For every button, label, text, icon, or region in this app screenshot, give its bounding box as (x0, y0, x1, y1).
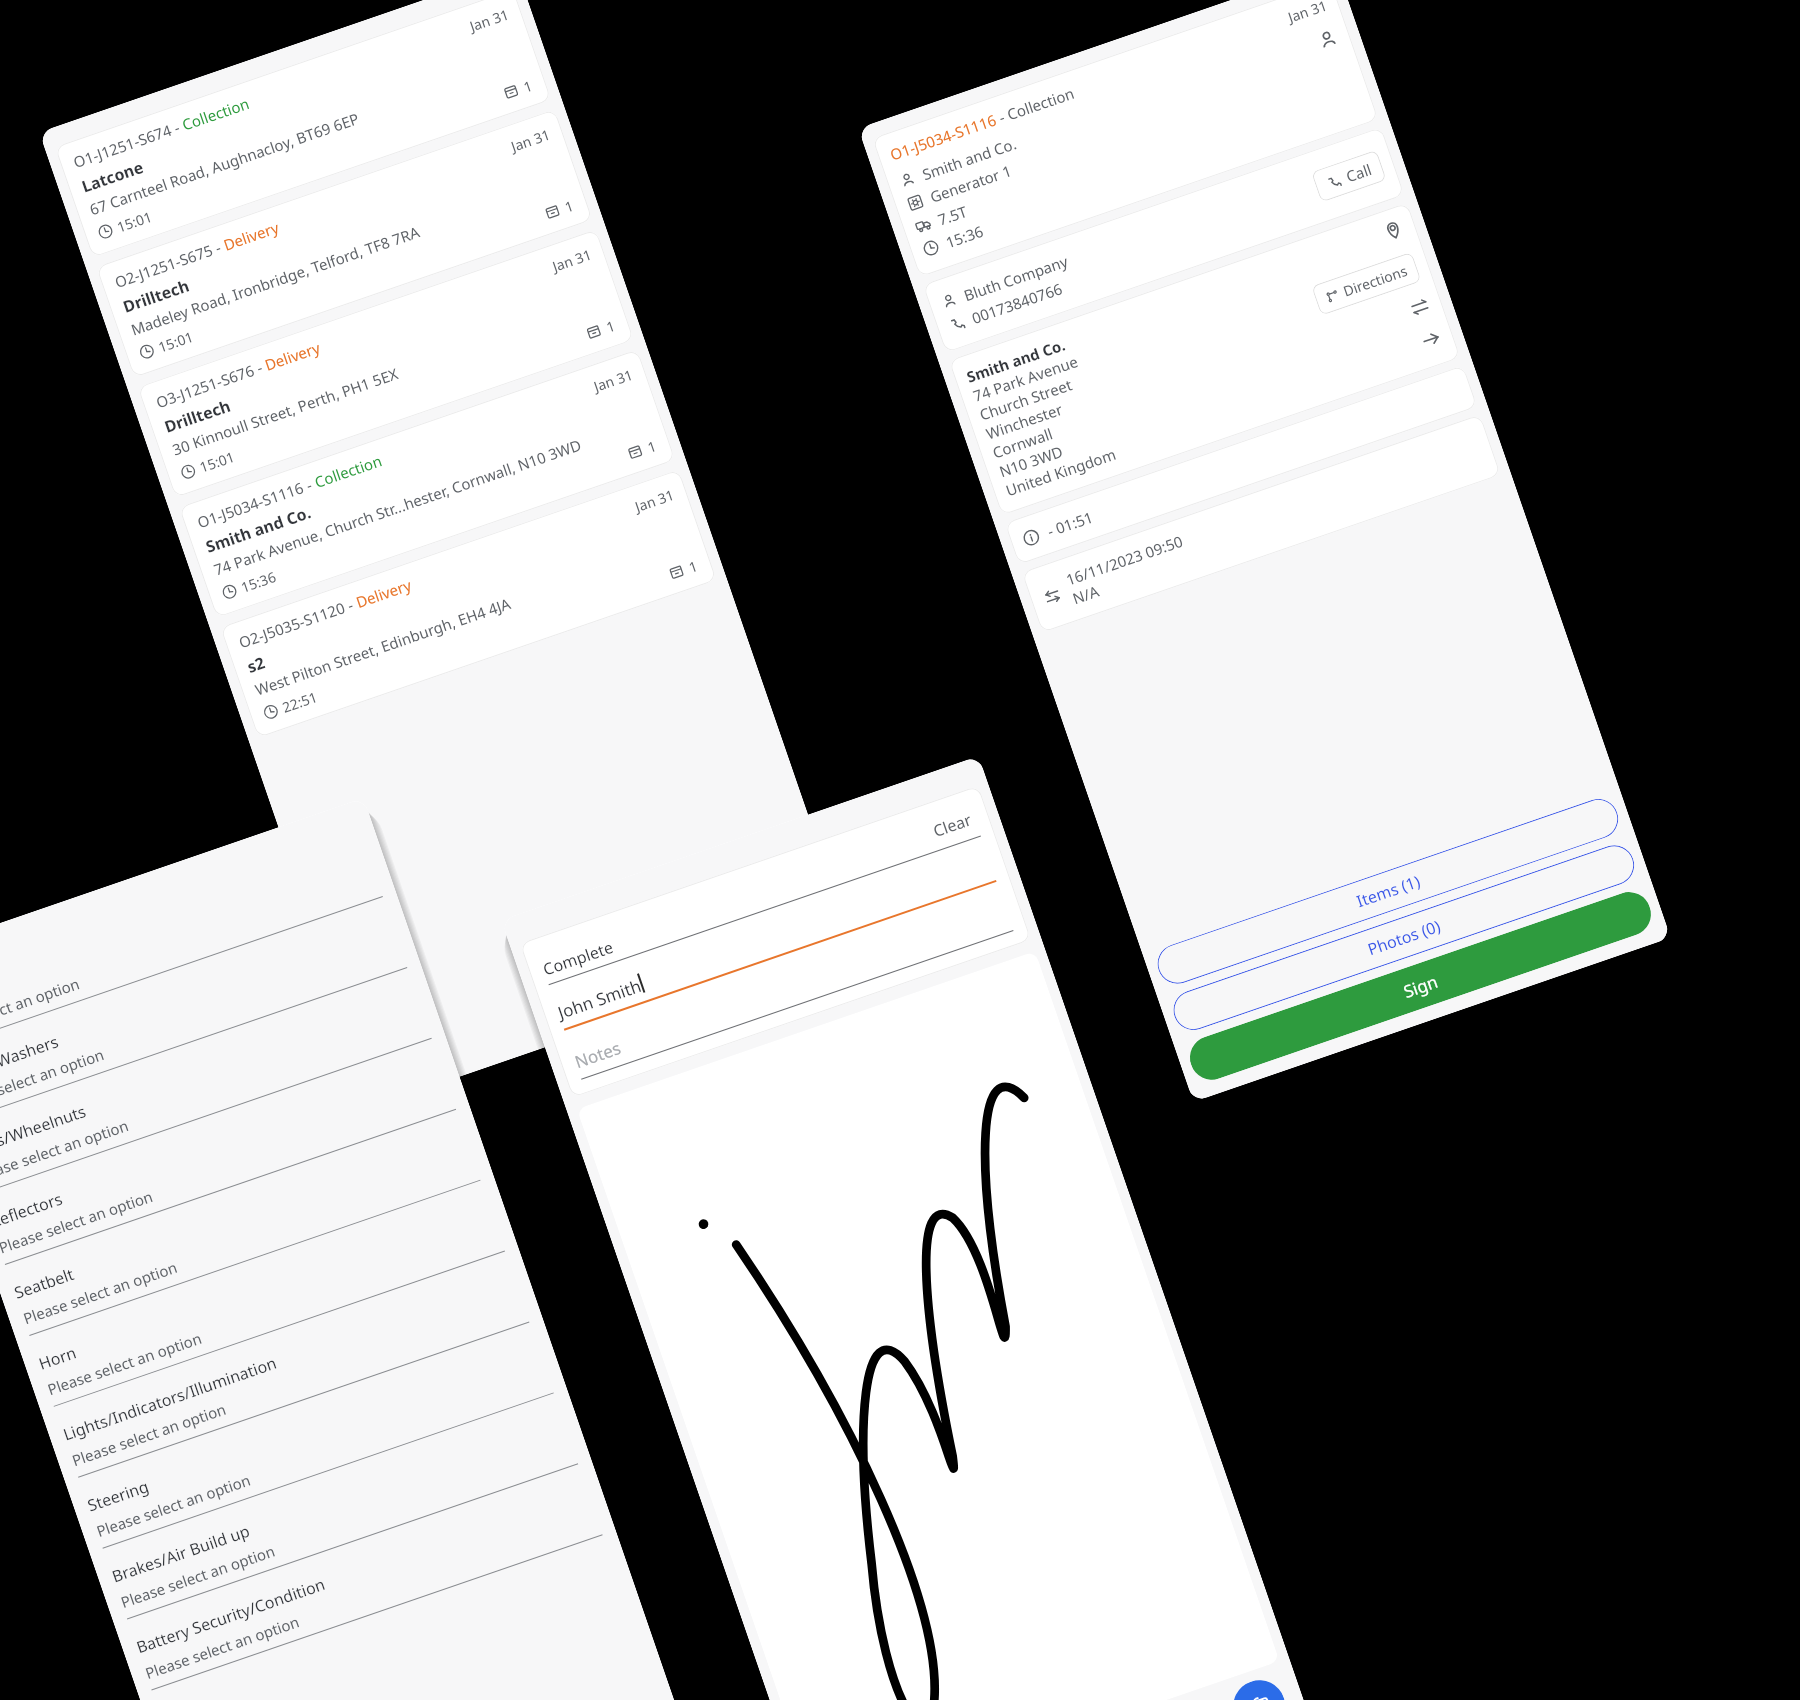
staticText: Please select an option (94, 1469, 253, 1541)
staticText: Please select an option (0, 973, 82, 1045)
staticText: O2-J5035-S1120 - (236, 593, 360, 652)
staticText: 7.5T (935, 201, 970, 230)
staticText: 16/11/2023 09:50 (1063, 530, 1186, 589)
staticText: O3-J1251-S676 - (153, 356, 268, 412)
staticText: Seatbelt (11, 1263, 77, 1304)
button[interactable]: Horn (31, 1185, 507, 1411)
staticText: Please select an option (45, 1328, 205, 1399)
button[interactable]: Call (1311, 150, 1387, 202)
staticText: Smith and Co. (964, 334, 1068, 387)
staticText: 74 Park Avenue, Church Str...hester, Cor… (211, 434, 584, 579)
staticText: Jan 31 (467, 5, 511, 36)
staticText: Call (1343, 159, 1374, 186)
button[interactable]: Mirrors (0, 831, 384, 1057)
staticText: 1 (521, 76, 535, 96)
staticText: - 01:51 (1044, 506, 1096, 541)
button[interactable]: Tyres/Wheelnuts (0, 973, 433, 1199)
staticText: 00173840766 (969, 278, 1065, 328)
staticText: Delivery (353, 574, 415, 612)
staticText: 15:36 (943, 221, 986, 252)
button[interactable]: Seatbelt (7, 1114, 482, 1341)
staticText: 1 (562, 196, 577, 216)
button[interactable]: Clear (925, 803, 979, 847)
staticText: 15:01 (114, 85, 507, 236)
staticText: Photos (0) (1365, 915, 1444, 960)
staticText: United Kingdom (1003, 444, 1119, 500)
staticText: Please select an option (0, 1044, 107, 1116)
staticText: Wipers/Washers (0, 1030, 62, 1091)
button[interactable]: Directions (1311, 252, 1421, 316)
button[interactable]: Items (1) (1152, 793, 1624, 989)
staticText: 30 Kinnoull Street, Perth, PH1 5EX (170, 363, 401, 459)
button[interactable]: Take photo (1226, 1673, 1292, 1700)
button[interactable]: Contact (1315, 27, 1340, 52)
staticText: Collection (179, 93, 252, 135)
staticText: Battery Security/Condition (133, 1573, 329, 1658)
staticText: Items (1) (1354, 870, 1423, 912)
staticText: - Collection (992, 82, 1077, 128)
staticText: Delivery (262, 337, 323, 375)
staticText: O2-J1251-S675 - (112, 236, 227, 292)
staticText: Madeley Road, Ironbridge, Telford, TF8 7… (128, 221, 422, 339)
staticText: Jan 31 (1285, 0, 1329, 27)
staticText: Please select an option (142, 1611, 302, 1683)
staticText: 1 (645, 436, 660, 457)
button[interactable]: Swap (1407, 294, 1433, 320)
staticText: 15:01 (197, 325, 590, 477)
staticText: Jan 31 (550, 245, 594, 276)
button[interactable]: Sign (1184, 886, 1657, 1086)
staticText: Smith and Co. (203, 501, 314, 558)
staticText: Jan 31 (591, 365, 635, 396)
staticText: 15:36 (238, 446, 631, 597)
staticText: 1 (603, 316, 618, 337)
staticText: Jan 31 (632, 485, 676, 516)
staticText: 74 Park Avenue (970, 351, 1081, 406)
staticText: 22:51 (280, 566, 672, 717)
staticText: Please select an option (69, 1398, 229, 1470)
staticText: Collection (312, 450, 385, 492)
button[interactable]: Brakes/Air Build up (104, 1398, 580, 1624)
staticText: O1-J1251-S674 - (71, 116, 186, 172)
staticText: 1 (686, 556, 701, 577)
staticText: Drilltech (120, 274, 192, 318)
staticText: Please select an option (0, 1115, 131, 1187)
staticText: Winchester (983, 399, 1066, 444)
staticText: Steering (85, 1475, 152, 1516)
staticText: West Pilton Street, Edinburgh, EH4 4JA (252, 593, 513, 700)
staticText: Reflectors (0, 1187, 66, 1233)
staticText: 67 Carnteel Road, Aughnacloy, BT69 6EP (87, 108, 362, 219)
staticText: Please select an option (118, 1540, 278, 1612)
staticText: Bluth Company (961, 251, 1071, 305)
staticText: 15:01 (156, 205, 548, 356)
staticText: O1-J5034-S1116 - (195, 473, 318, 532)
button[interactable]: Wipers/Washers (0, 902, 409, 1128)
staticText: Sign (1400, 970, 1441, 1003)
button[interactable]: Send (1418, 326, 1444, 352)
staticText: Tyres/Wheelnuts (0, 1100, 89, 1162)
button[interactable]: Lights/Indicators/Illumination (56, 1256, 531, 1482)
staticText: Please select an option (0, 1186, 156, 1257)
button[interactable]: Steering (80, 1327, 555, 1553)
staticText: N10 3WD (996, 441, 1065, 481)
staticText: Jan 31 (508, 125, 552, 156)
staticText: Latcone (79, 156, 146, 197)
staticText: Notes (572, 1036, 624, 1073)
button[interactable]: Photos (0) (1168, 840, 1640, 1035)
button[interactable]: Map (1381, 218, 1406, 243)
staticText: Directions (1341, 261, 1410, 301)
staticText: Brakes/Air Build up (109, 1519, 253, 1587)
button[interactable]: Reflectors (0, 1043, 458, 1270)
staticText: Lights/Indicators/Illumination (60, 1351, 280, 1446)
staticText: Delivery (221, 217, 282, 255)
button[interactable]: Battery Security/Condition (129, 1469, 604, 1695)
staticText: Please select an option (20, 1257, 180, 1328)
staticText: Church Street (977, 374, 1075, 425)
staticText: N/A (1070, 581, 1102, 608)
staticText: Cornwall (990, 423, 1055, 462)
staticText: Clear (930, 808, 974, 842)
staticText: s2 (244, 651, 268, 678)
staticText: Horn (36, 1341, 80, 1375)
staticText: Smith and Co. (919, 133, 1020, 184)
staticText: John Smith (555, 974, 644, 1024)
staticText: Generator 1 (927, 160, 1014, 207)
